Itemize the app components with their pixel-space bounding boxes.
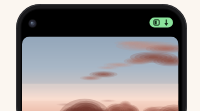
button[interactable]: Phone showing sunset photo [0,0,200,111]
